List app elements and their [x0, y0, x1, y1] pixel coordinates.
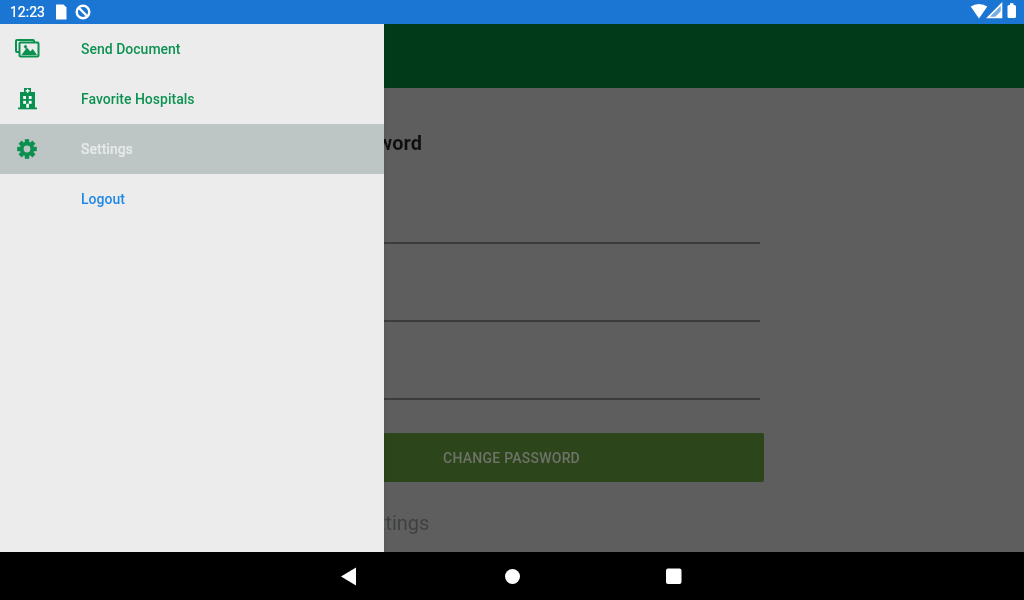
staticText: Favorite Hospitals [81, 91, 195, 107]
button[interactable]: Logout [0, 174, 384, 224]
button[interactable]: Settings [0, 124, 384, 174]
button[interactable]: Send Document [0, 24, 384, 74]
button[interactable]: Favorite Hospitals [0, 74, 384, 124]
staticText: Change Password [260, 131, 422, 154]
staticText: Logout [81, 191, 125, 207]
staticText: 12:23 [10, 4, 45, 20]
staticText: CHANGE PASSWORD [443, 450, 581, 466]
staticText: Notification Settings [248, 511, 430, 534]
staticText: Send Document [81, 41, 181, 57]
button[interactable]: CHANGE PASSWORD [260, 433, 764, 482]
button[interactable] [342, 552, 683, 600]
staticText: Settings [81, 141, 133, 157]
